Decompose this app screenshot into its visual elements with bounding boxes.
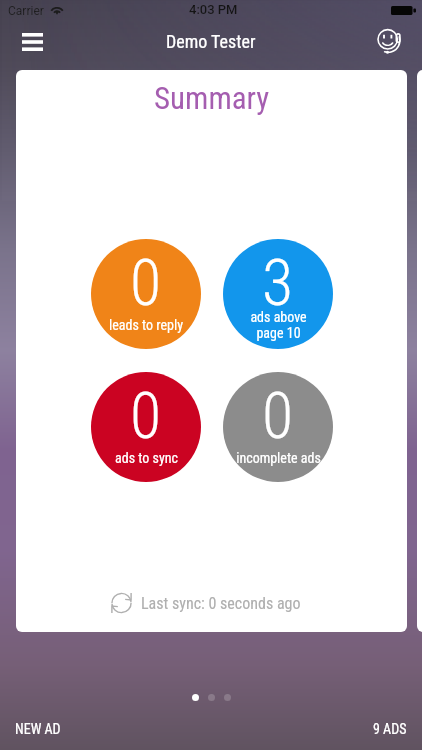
staticText: 0	[130, 379, 162, 454]
staticText: Last sync: 0 seconds ago	[141, 594, 301, 613]
button[interactable]: 3	[223, 239, 333, 349]
staticText: 4:03 PM	[189, 2, 238, 17]
staticText: Summary	[154, 80, 270, 116]
staticText: leads to reply	[109, 317, 183, 333]
staticText: NEW AD	[15, 721, 61, 737]
button[interactable]: Menu	[10, 21, 54, 63]
staticText: page 10	[256, 325, 301, 341]
button[interactable]: NEW AD	[9, 713, 67, 745]
staticText: Demo Tester	[166, 31, 256, 52]
button[interactable]: Support	[368, 20, 412, 64]
button[interactable]: 0	[91, 372, 201, 482]
staticText: ads to sync	[115, 450, 178, 466]
staticText: 9 ADS	[373, 721, 407, 737]
button[interactable]: Last sync: 0 seconds ago	[110, 591, 301, 615]
staticText: Carrier	[8, 4, 44, 18]
button[interactable]: 0	[223, 372, 333, 482]
button[interactable]: 0	[91, 239, 201, 349]
staticText: incomplete ads	[236, 450, 321, 466]
staticText: 0	[130, 246, 162, 321]
staticText: 0	[262, 379, 294, 454]
staticText: ads above	[250, 309, 307, 325]
button[interactable]: 9 ADS	[367, 713, 413, 745]
staticText: 3	[262, 246, 294, 321]
